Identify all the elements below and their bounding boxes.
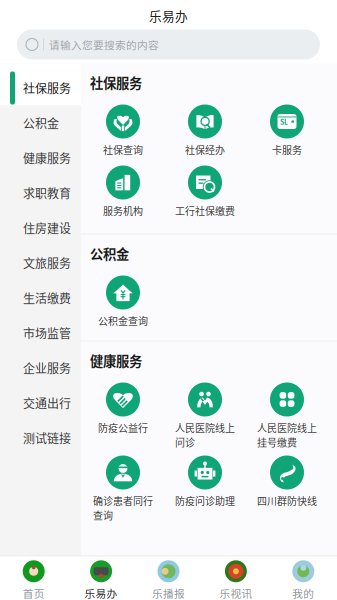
staticText: 文旅服务 — [23, 254, 71, 272]
staticText: 乐视讯 — [219, 585, 252, 600]
staticText: 生活缴费 — [23, 289, 71, 307]
button[interactable]: 社保经办 — [164, 101, 246, 162]
button[interactable]: 公积金 — [0, 105, 81, 140]
staticText: 社保服务 — [23, 79, 71, 97]
button[interactable]: 乐易办 — [67, 556, 135, 598]
staticText: 四川群防快线 — [257, 493, 317, 508]
button[interactable]: 我的 — [270, 556, 337, 598]
button[interactable]: 四川群防快线 — [246, 452, 328, 525]
staticText: 首页 — [23, 585, 45, 600]
staticText: 健康服务 — [90, 351, 142, 370]
staticText: 人民医院线上问诊 — [175, 420, 235, 449]
button[interactable]: 社保服务 — [0, 70, 81, 105]
button[interactable]: 交通出行 — [0, 385, 81, 420]
staticText: 健康服务 — [23, 149, 71, 167]
staticText: 测试链接 — [23, 429, 71, 447]
button[interactable]: 首页 — [0, 556, 67, 598]
button[interactable]: 工行社保缴费 — [164, 162, 246, 223]
button[interactable]: 公积金查询 — [82, 272, 164, 333]
staticText: SL — [280, 117, 288, 127]
button[interactable]: 住房建设 — [0, 210, 81, 245]
staticText: 交通出行 — [23, 394, 71, 412]
button[interactable]: 企业服务 — [0, 350, 81, 385]
staticText: 乐易办 — [149, 6, 188, 25]
button[interactable]: 市场监管 — [0, 315, 81, 350]
staticText: 公积金查询 — [98, 313, 148, 328]
staticText: 人民医院线上挂号缴费 — [257, 420, 317, 449]
staticText: 企业服务 — [23, 359, 71, 377]
staticText: 社保经办 — [185, 142, 225, 157]
staticText: 防疫问诊助理 — [175, 493, 235, 508]
staticText: 公积金 — [90, 244, 129, 263]
staticText: 社保查询 — [103, 142, 143, 157]
staticText: 求职教育 — [23, 184, 71, 202]
button[interactable]: 测试链接 — [0, 420, 81, 455]
staticText: 市场监管 — [23, 324, 71, 342]
button[interactable]: 防疫公益行 — [82, 379, 164, 452]
staticText: 请输入您要搜索的内容 — [49, 37, 159, 52]
staticText: 乐易办 — [85, 585, 118, 600]
staticText: 我的 — [292, 585, 314, 600]
button[interactable]: 乐播报 — [135, 556, 202, 598]
staticText: 工行社保缴费 — [175, 203, 235, 218]
button[interactable]: 乐视讯 — [202, 556, 270, 598]
staticText: 确诊患者同行查询 — [93, 493, 153, 522]
button[interactable]: 社保查询 — [82, 101, 164, 162]
button[interactable]: 人民医院线上问诊 — [164, 379, 246, 452]
button[interactable]: 文旅服务 — [0, 245, 81, 280]
staticText: 住房建设 — [23, 219, 71, 237]
staticText: 防疫公益行 — [98, 420, 148, 435]
button[interactable]: 确诊患者同行查询 — [82, 452, 164, 525]
button[interactable]: 生活缴费 — [0, 280, 81, 315]
button[interactable]: 防疫问诊助理 — [164, 452, 246, 525]
staticText: 服务机构 — [103, 203, 143, 218]
button[interactable]: SL — [246, 101, 328, 162]
button[interactable]: 人民医院线上挂号缴费 — [246, 379, 328, 452]
staticText: 社保服务 — [90, 73, 142, 92]
staticText: 乐播报 — [152, 585, 185, 600]
button[interactable]: 健康服务 — [0, 140, 81, 175]
staticText: 公积金 — [23, 114, 59, 132]
staticText: 卡服务 — [272, 142, 302, 157]
button[interactable]: 求职教育 — [0, 175, 81, 210]
button[interactable]: 服务机构 — [82, 162, 164, 223]
